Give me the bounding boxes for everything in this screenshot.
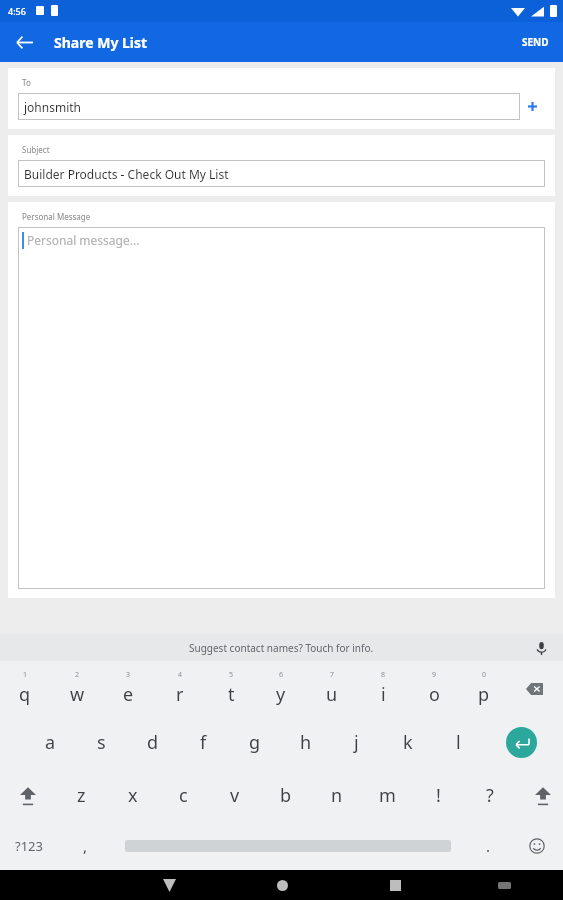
button[interactable]: Shift: [0, 769, 56, 822]
staticText: b: [280, 783, 292, 808]
staticText: ?123: [15, 837, 43, 855]
button[interactable]: v: [209, 769, 260, 822]
staticText: Share My List: [54, 33, 148, 52]
button[interactable]: c: [158, 769, 209, 822]
button[interactable]: SEND: [508, 27, 563, 57]
button[interactable]: j: [331, 716, 382, 769]
button[interactable]: Enter: [497, 716, 545, 769]
staticText: ,: [83, 836, 88, 856]
staticText: f: [200, 730, 207, 755]
button[interactable]: 1: [0, 661, 50, 716]
button[interactable]: 0: [459, 661, 509, 716]
staticText: x: [128, 783, 138, 808]
button[interactable]: 2: [52, 661, 102, 716]
button[interactable]: k: [382, 716, 433, 769]
button[interactable]: h: [280, 716, 331, 769]
staticText: t: [228, 682, 235, 707]
staticText: .: [486, 836, 491, 856]
button[interactable]: d: [127, 716, 178, 769]
button[interactable]: g: [229, 716, 280, 769]
staticText: 9: [432, 670, 437, 680]
staticText: n: [331, 783, 343, 808]
staticText: 2: [75, 670, 80, 680]
button[interactable]: Back: [8, 26, 40, 58]
button[interactable]: Builder Products - Check Out My List: [18, 160, 545, 187]
button[interactable]: Recents: [374, 870, 416, 900]
button[interactable]: .: [463, 822, 513, 870]
button[interactable]: n: [311, 769, 362, 822]
button[interactable]: ,: [58, 822, 113, 870]
button[interactable]: 6: [256, 661, 306, 716]
staticText: h: [300, 730, 312, 755]
button[interactable]: x: [107, 769, 158, 822]
button[interactable]: l: [433, 716, 484, 769]
staticText: k: [403, 730, 413, 755]
button[interactable]: Hide keyboard: [148, 870, 190, 900]
staticText: 3: [126, 670, 131, 680]
button[interactable]: johnsmith: [18, 93, 520, 120]
button[interactable]: s: [76, 716, 127, 769]
staticText: johnsmith: [24, 99, 82, 115]
button[interactable]: 5: [206, 661, 256, 716]
staticText: !: [436, 783, 441, 808]
staticText: r: [176, 682, 184, 707]
staticText: Builder Products - Check Out My List: [24, 166, 229, 182]
staticText: ?: [486, 783, 494, 808]
staticText: 8: [381, 670, 386, 680]
button[interactable]: Home: [261, 870, 303, 900]
button[interactable]: Voice input: [531, 638, 551, 658]
button[interactable]: m: [362, 769, 413, 822]
staticText: c: [179, 783, 188, 808]
button[interactable]: ?123: [0, 822, 58, 870]
staticText: Personal Message: [22, 211, 91, 222]
button[interactable]: Add contact: [520, 93, 545, 120]
staticText: 6: [279, 670, 284, 680]
button[interactable]: ?: [464, 769, 515, 822]
button[interactable]: z: [56, 769, 107, 822]
staticText: v: [230, 783, 240, 808]
staticText: u: [326, 682, 338, 707]
button[interactable]: 3: [103, 661, 153, 716]
button[interactable]: Personal message...: [18, 227, 545, 589]
staticText: d: [147, 730, 159, 755]
staticText: 4: [178, 670, 183, 680]
button[interactable]: Backspace: [512, 661, 557, 716]
button[interactable]: 7: [307, 661, 357, 716]
staticText: g: [249, 730, 261, 755]
button[interactable]: a: [25, 716, 76, 769]
staticText: y: [276, 682, 286, 707]
staticText: l: [456, 730, 461, 755]
button[interactable]: Shift: [515, 769, 563, 822]
staticText: a: [45, 730, 56, 755]
staticText: i: [381, 682, 386, 707]
button[interactable]: 9: [409, 661, 459, 716]
staticText: j: [354, 730, 359, 755]
staticText: q: [19, 682, 31, 707]
staticText: 1: [23, 670, 28, 680]
staticText: Personal message...: [27, 232, 140, 248]
staticText: 7: [330, 670, 335, 680]
button[interactable]: Emoji: [513, 822, 561, 870]
button[interactable]: Suggest contact names? Touch for info.: [189, 641, 374, 655]
button[interactable]: Switch keyboard: [483, 870, 525, 900]
staticText: 4:56: [8, 5, 26, 17]
staticText: p: [478, 682, 490, 707]
staticText: 5: [229, 670, 234, 680]
staticText: m: [379, 783, 396, 808]
staticText: To: [22, 77, 31, 88]
staticText: e: [123, 682, 134, 707]
button[interactable]: 8: [358, 661, 408, 716]
staticText: SEND: [522, 35, 549, 49]
staticText: Subject: [22, 144, 50, 155]
button[interactable]: !: [413, 769, 464, 822]
staticText: w: [70, 682, 85, 707]
staticText: 0: [482, 670, 487, 680]
staticText: o: [429, 682, 440, 707]
button[interactable]: f: [178, 716, 229, 769]
button[interactable]: Space: [113, 822, 463, 870]
button[interactable]: b: [260, 769, 311, 822]
staticText: z: [77, 783, 86, 808]
button[interactable]: 4: [155, 661, 205, 716]
staticText: s: [97, 730, 106, 755]
